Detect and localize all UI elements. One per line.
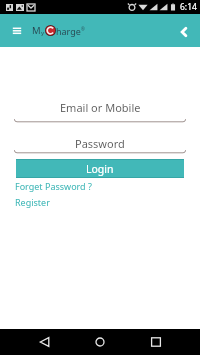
staticText: Password bbox=[75, 136, 125, 148]
staticText: M bbox=[32, 24, 41, 37]
staticText: Login bbox=[86, 162, 114, 176]
staticText: Register bbox=[15, 196, 50, 208]
button[interactable]: Register bbox=[15, 196, 50, 208]
button[interactable]: Login bbox=[16, 159, 184, 178]
staticText: Email or Mobile bbox=[60, 100, 141, 112]
staticText: ® bbox=[81, 26, 85, 32]
button[interactable]: Forget Password ? bbox=[15, 180, 92, 192]
button[interactable]: Open navigation menu bbox=[10, 22, 24, 40]
button[interactable]: Back bbox=[176, 23, 192, 39]
staticText: 6:14 bbox=[180, 1, 197, 13]
button[interactable]: Recent apps bbox=[145, 331, 167, 353]
button[interactable]: Back bbox=[34, 331, 56, 353]
staticText: y bbox=[41, 29, 45, 37]
staticText: Forget Password ? bbox=[15, 180, 92, 192]
button[interactable]: Home bbox=[89, 331, 111, 353]
staticText: harge bbox=[56, 25, 81, 37]
